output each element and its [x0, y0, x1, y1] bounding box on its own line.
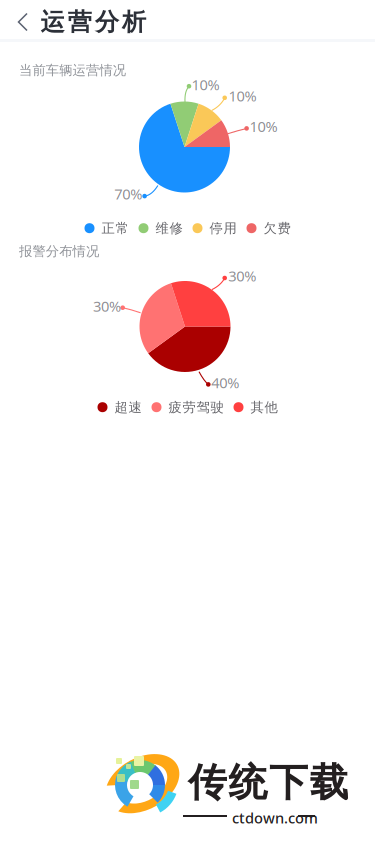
staticText: 况 [113, 62, 126, 78]
button[interactable]: Back [0, 0, 40, 44]
staticText: 情 [73, 243, 86, 259]
staticText: 运 [40, 7, 64, 37]
staticText: 他 [264, 399, 277, 415]
staticText: 疲 [168, 399, 181, 415]
staticText: 劳 [182, 399, 195, 415]
button[interactable]: 维 [138, 220, 182, 236]
staticText: 常 [115, 220, 128, 236]
staticText: 40% [211, 373, 239, 392]
button[interactable]: 停 [192, 220, 236, 236]
staticText: 70% [114, 184, 142, 204]
staticText: 析 [122, 7, 146, 37]
staticText: 超 [114, 399, 127, 415]
staticText: 载 [310, 759, 349, 806]
staticText: 传 [188, 759, 227, 806]
staticText: 速 [128, 399, 141, 415]
staticText: 驶 [210, 399, 223, 415]
staticText: 分 [95, 7, 119, 37]
staticText: 正 [101, 220, 114, 236]
staticText: 停 [209, 220, 222, 236]
staticText: 修 [169, 220, 182, 236]
staticText: 10% [228, 86, 256, 106]
staticText: 10% [250, 116, 278, 136]
staticText: 辆 [59, 62, 72, 78]
staticText: 下 [269, 759, 308, 806]
button[interactable]: 超 [97, 399, 141, 415]
button[interactable]: 其 [233, 399, 277, 415]
staticText: 维 [155, 220, 168, 236]
staticText: 布 [59, 243, 72, 259]
button[interactable]: 正 [84, 220, 128, 236]
staticText: 费 [277, 220, 290, 236]
staticText: 况 [86, 243, 99, 259]
staticText: 当 [19, 62, 32, 78]
staticText: 警 [32, 243, 45, 259]
button[interactable]: 疲 [151, 399, 223, 415]
staticText: 30% [93, 296, 121, 316]
staticText: 营 [68, 7, 92, 37]
staticText: 运 [73, 62, 86, 78]
staticText: 统 [229, 759, 268, 806]
staticText: 前 [32, 62, 45, 78]
button[interactable]: 欠 [246, 220, 290, 236]
staticText: 营 [86, 62, 99, 78]
staticText: ctdown.com [232, 808, 318, 827]
staticText: 欠 [263, 220, 276, 236]
staticText: 其 [250, 399, 263, 415]
staticText: 用 [223, 220, 236, 236]
staticText: 分 [46, 243, 59, 259]
staticText: 驾 [196, 399, 209, 415]
staticText: 情 [99, 62, 112, 78]
staticText: 报 [19, 243, 32, 259]
staticText: 30% [228, 266, 256, 286]
staticText: 车 [46, 62, 59, 78]
staticText: 10% [192, 75, 220, 94]
